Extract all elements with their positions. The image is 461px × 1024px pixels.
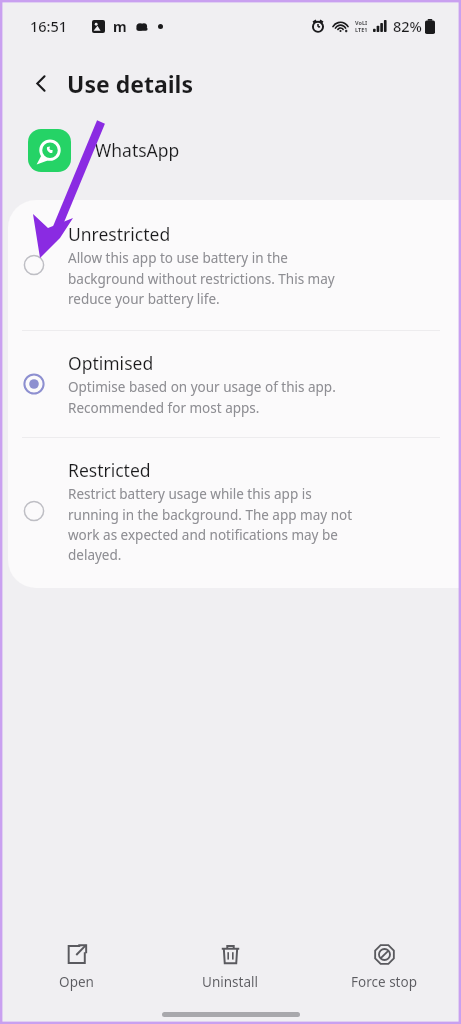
staticText: Force stop xyxy=(351,973,417,991)
staticText: Restricted xyxy=(68,458,151,482)
staticText: Allow this app to use battery in the bac… xyxy=(68,249,335,308)
button[interactable]: Unrestricted xyxy=(8,200,461,330)
staticText: 82% xyxy=(393,16,422,36)
staticText: Uninstall xyxy=(202,973,258,991)
staticText: Open xyxy=(59,973,94,991)
button[interactable]: Uninstall xyxy=(153,937,307,997)
button[interactable]: Open xyxy=(0,937,153,997)
staticText: LTE1 xyxy=(355,26,368,33)
button[interactable]: Back xyxy=(24,66,58,100)
staticText: VoLI xyxy=(355,19,368,26)
staticText: Restrict battery usage while this app is… xyxy=(68,485,353,564)
staticText: 16:51 xyxy=(30,16,68,36)
staticText: WhatsApp xyxy=(95,138,180,162)
staticText: Optimise based on your usage of this app… xyxy=(68,378,336,417)
staticText: Use details xyxy=(67,68,193,99)
staticText: Optimised xyxy=(68,351,154,375)
button[interactable]: Restricted xyxy=(8,438,461,588)
staticText: m xyxy=(113,17,127,36)
button[interactable]: Optimised xyxy=(8,331,461,437)
staticText: Unrestricted xyxy=(68,222,171,246)
button[interactable]: Force stop xyxy=(307,937,461,997)
